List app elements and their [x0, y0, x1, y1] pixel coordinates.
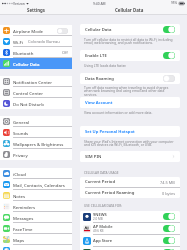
staticText: Current Period: [85, 179, 116, 185]
staticText: Sounds: [13, 130, 29, 136]
staticText: Share your iPad's Internet connection wi…: [84, 139, 175, 147]
button[interactable]: 9NEWS: [83, 211, 175, 222]
staticText: Do Not Disturb: [13, 101, 44, 107]
staticText: View Account: [85, 100, 113, 106]
staticText: Verizon: [13, 1, 25, 5]
button[interactable]: Sounds: [0, 127, 72, 138]
staticText: Wallpapers & Brightness: [13, 141, 64, 147]
staticText: Airplane Mode: [13, 28, 44, 34]
button[interactable]: Reminders: [0, 201, 72, 212]
button[interactable]: General: [0, 116, 72, 127]
staticText: Maps: [13, 237, 25, 243]
button[interactable]: iCloud: [0, 168, 72, 179]
staticText: Bluetooth: [13, 50, 34, 56]
staticText: AP Mobile: [93, 224, 113, 229]
button[interactable]: BOTW: [163, 249, 175, 250]
button[interactable]: Notification Center: [0, 76, 72, 87]
button[interactable]: Safari: [0, 245, 72, 250]
staticText: Control Center: [13, 90, 44, 96]
button[interactable]: FaceTime: [0, 223, 72, 234]
staticText: Notes: [13, 193, 26, 199]
button[interactable]: BOTW: [83, 247, 175, 250]
button[interactable]: Privacy: [0, 149, 72, 160]
button[interactable]: Enable LTE: [163, 52, 175, 59]
staticText: Mail, Contacts, Calendars: [13, 182, 65, 188]
staticText: Cellular Data: [13, 61, 40, 67]
button[interactable]: Airplane Mode: [0, 25, 72, 36]
staticText: Set Up Personal Hotspot: [85, 129, 135, 135]
staticText: 9NEWS: [93, 212, 107, 217]
button[interactable]: Bluetooth: [0, 47, 72, 58]
button[interactable]: Airplane Mode off: [57, 28, 68, 34]
button[interactable]: Set Up Personal Hotspot: [85, 126, 175, 137]
staticText: 49.6 KB: [93, 229, 104, 233]
staticText: 74.5 MB: [160, 180, 175, 185]
staticText: 2.0 MB: [93, 217, 103, 221]
button[interactable]: Wi-Fi: [0, 36, 72, 47]
staticText: 95%: [171, 1, 178, 5]
button[interactable]: Cellular Data: [85, 24, 175, 35]
button[interactable]: Control Center: [0, 87, 72, 98]
staticText: iCloud: [13, 171, 27, 177]
staticText: Enable LTE: [85, 53, 107, 59]
staticText: CELLULAR DATA USAGE: [84, 171, 187, 175]
staticText: Cellular Data: [115, 7, 144, 13]
button[interactable]: Cellular Data: [163, 26, 175, 33]
button[interactable]: SIM PIN: [85, 151, 175, 162]
staticText: Reminders: [13, 204, 36, 210]
staticText: Settings: [27, 7, 45, 13]
staticText: Cellular Data: [85, 27, 112, 33]
staticText: General: [13, 119, 30, 125]
staticText: Messages: [13, 215, 34, 221]
button[interactable]: Maps: [0, 234, 72, 245]
staticText: USE CELLULAR DATA FOR:: [84, 204, 187, 208]
staticText: Wi-Fi: [13, 39, 24, 45]
staticText: FaceTime: [13, 226, 33, 232]
staticText: App Store: [93, 238, 113, 243]
button[interactable]: App Store: [163, 237, 175, 244]
button[interactable]: Wallpapers & Brightness: [0, 138, 72, 149]
button[interactable]: App Store: [83, 235, 175, 246]
button[interactable]: AP Mobile: [83, 223, 175, 234]
button[interactable]: Mail, Contacts, Calendars: [0, 179, 72, 190]
button[interactable]: Messages: [0, 212, 72, 223]
button[interactable]: AP Mobile: [163, 225, 175, 232]
button[interactable]: Data Roaming: [85, 73, 175, 84]
button[interactable]: Current Period Roaming: [85, 188, 175, 198]
staticText: 9:40 AM: [93, 1, 106, 5]
staticText: Turn off data roaming when traveling to …: [84, 85, 175, 97]
button[interactable]: Notes: [0, 190, 72, 201]
staticText: Notification Center: [13, 79, 53, 85]
staticText: SIM PIN: [85, 154, 102, 160]
staticText: Off: [62, 50, 68, 55]
button[interactable]: Current Period: [85, 177, 175, 187]
staticText: Colorado Bureau of ...: [28, 39, 68, 44]
staticText: View account information or add more dat…: [84, 110, 175, 114]
staticText: 0 bytes: [162, 191, 175, 196]
button[interactable]: Enable LTE: [85, 50, 175, 61]
button[interactable]: View Account: [85, 97, 175, 108]
staticText: Data Roaming: [85, 76, 114, 82]
staticText: Turn off cellular data to restrict all d…: [84, 37, 175, 45]
button[interactable]: Cellular Data: [0, 58, 72, 69]
staticText: Using LTE loads data faster.: [84, 63, 175, 67]
button[interactable]: 9NEWS: [163, 213, 175, 220]
button[interactable]: Data Roaming: [163, 75, 175, 82]
button[interactable]: Do Not Disturb: [0, 98, 72, 109]
staticText: Privacy: [13, 152, 28, 158]
staticText: Current Period Roaming: [85, 190, 135, 196]
